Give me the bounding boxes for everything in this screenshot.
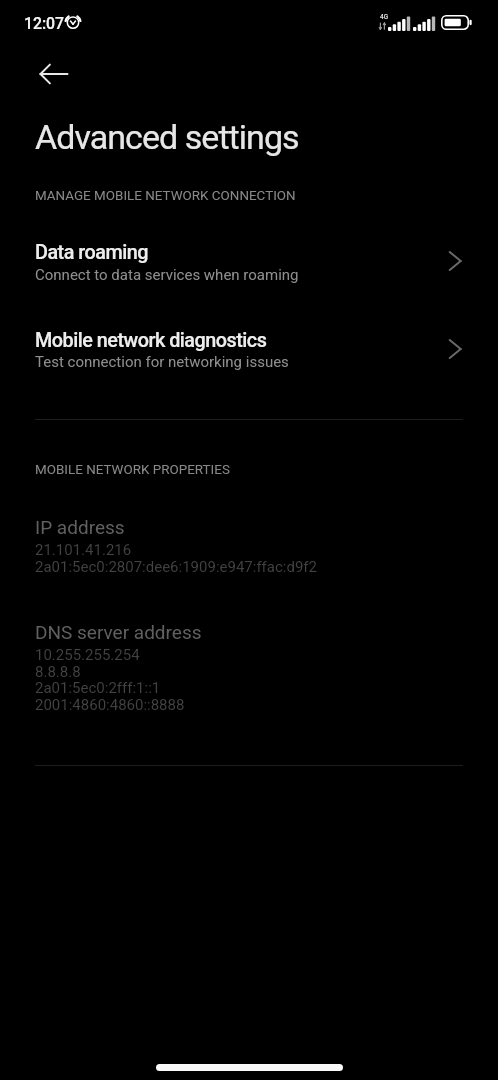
staticText: Test connection for networking issues: [35, 353, 289, 371]
button[interactable]: Back: [30, 50, 78, 98]
staticText: 10.255.255.254: [35, 646, 140, 664]
staticText: DNS server address: [35, 621, 202, 643]
staticText: IP address: [35, 516, 125, 538]
staticText: Mobile network diagnostics: [35, 329, 267, 352]
button[interactable]: Data roaming: [0, 223, 498, 285]
staticText: 2a01:5ec0:2807:dee6:1909:e947:ffac:d9f2: [35, 558, 318, 576]
staticText: Advanced settings: [35, 117, 299, 157]
staticText: 2a01:5ec0:2fff:1::1: [35, 679, 161, 697]
staticText: MANAGE MOBILE NETWORK CONNECTION: [35, 188, 296, 204]
staticText: 2001:4860:4860::8888: [35, 696, 185, 714]
staticText: Data roaming: [35, 241, 148, 264]
staticText: 12:07: [24, 14, 65, 33]
staticText: MOBILE NETWORK PROPERTIES: [35, 462, 230, 478]
button[interactable]: Mobile network diagnostics: [0, 311, 498, 373]
staticText: 8.8.8.8: [35, 663, 81, 681]
staticText: 4G: [380, 13, 388, 21]
staticText: Connect to data services when roaming: [35, 266, 299, 284]
staticText: 21.101.41.216: [35, 541, 132, 559]
